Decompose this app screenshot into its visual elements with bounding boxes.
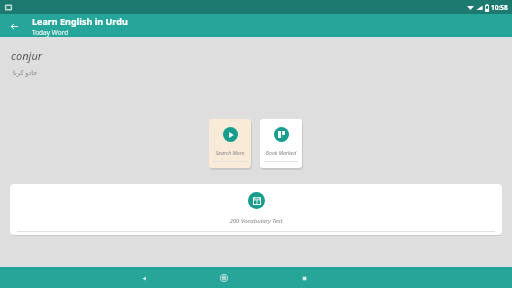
staticText: Book Marked (260, 149, 302, 156)
staticText: Learn English in Urdu (32, 15, 128, 27)
button[interactable]: Search More (209, 119, 251, 168)
button[interactable]: 200 Vocabulary Test (10, 184, 502, 235)
staticText: جادو کرنا (13, 68, 38, 77)
staticText: conjur (11, 48, 43, 63)
staticText: 10:58 (491, 3, 508, 12)
button[interactable]: Home (216, 270, 232, 286)
button[interactable]: Recent apps (296, 270, 312, 286)
button[interactable]: Book Marked (260, 119, 302, 168)
button[interactable]: Back (136, 270, 152, 286)
staticText: Search More (209, 149, 251, 156)
staticText: 200 Vocabulary Test (10, 217, 502, 225)
button[interactable]: Back (4, 16, 24, 36)
staticText: Today Word (32, 28, 69, 37)
